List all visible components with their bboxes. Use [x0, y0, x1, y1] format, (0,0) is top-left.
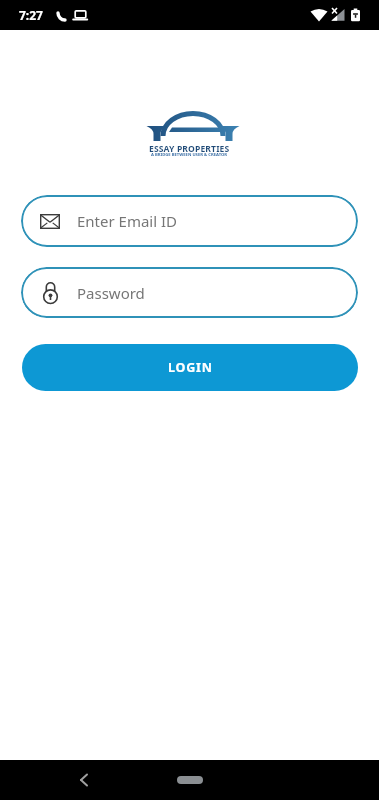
button[interactable]	[72, 768, 96, 792]
staticText: Password	[77, 283, 145, 303]
staticText: A BRIDGE BETWEEN USER & CREATOR	[151, 152, 228, 158]
staticText: 7:27	[19, 7, 43, 23]
button[interactable]: Password	[21, 267, 358, 318]
staticText: ESSAY PROPERTIES	[149, 143, 230, 155]
button[interactable]: LOGIN	[22, 344, 358, 391]
button[interactable]: Enter Email ID	[21, 195, 358, 247]
staticText: Enter Email ID	[77, 211, 178, 231]
button[interactable]	[177, 776, 203, 784]
staticText: LOGIN	[168, 359, 213, 376]
